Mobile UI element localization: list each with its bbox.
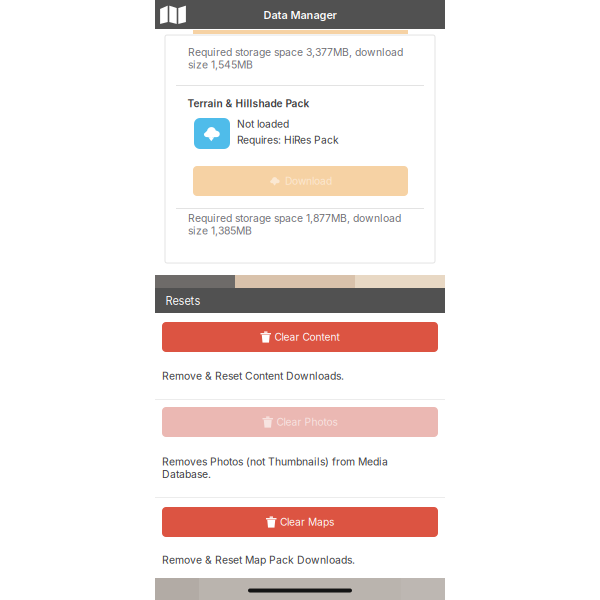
staticText: Requires: HiRes Pack bbox=[237, 134, 339, 146]
staticText: Clear Maps bbox=[280, 516, 334, 528]
staticText: Required storage space 3,377MB, download… bbox=[188, 46, 403, 71]
staticText: Not loaded bbox=[237, 118, 289, 130]
staticText: Terrain & Hillshade Pack bbox=[187, 97, 309, 110]
staticText: Required storage space 1,877MB, download… bbox=[188, 212, 401, 237]
button[interactable]: Clear Photos bbox=[162, 407, 438, 437]
staticText: Resets bbox=[165, 294, 200, 308]
staticText: Removes Photos (not Thumbnails) from Med… bbox=[162, 455, 388, 481]
button[interactable]: Clear Maps bbox=[162, 507, 438, 537]
staticText: Remove & Reset Map Pack Downloads. bbox=[162, 554, 355, 566]
button[interactable]: Download bbox=[193, 166, 408, 196]
staticText: Remove & Reset Content Downloads. bbox=[162, 370, 344, 382]
staticText: Download bbox=[285, 175, 332, 187]
staticText: Clear Photos bbox=[276, 416, 337, 428]
button[interactable]: Clear Content bbox=[162, 322, 438, 352]
staticText: Data Manager bbox=[263, 8, 336, 22]
button[interactable]: Maps bbox=[154, 0, 192, 29]
staticText: Clear Content bbox=[274, 331, 339, 343]
